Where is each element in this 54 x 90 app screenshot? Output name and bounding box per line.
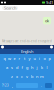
staticText: q — [3, 56, 5, 61]
staticText: g — [26, 65, 28, 70]
staticText: h — [31, 65, 33, 70]
staticText: r — [18, 56, 20, 61]
staticText: p — [48, 56, 50, 61]
staticText: k — [41, 65, 43, 70]
staticText: 9:41 — [46, 0, 53, 5]
staticText: ?123 — [2, 84, 9, 87]
staticText: c — [21, 74, 23, 79]
staticText: . — [41, 83, 42, 88]
staticText: j — [36, 65, 37, 70]
staticText: n — [36, 74, 38, 79]
staticText: , — [12, 83, 13, 88]
button[interactable]: Search — [2, 6, 18, 10]
staticText: d — [16, 65, 18, 70]
staticText: u — [33, 56, 35, 61]
staticText: y — [28, 56, 30, 61]
staticText: ok — [45, 18, 49, 23]
staticText: b — [31, 74, 33, 79]
staticText: Search — [4, 5, 16, 11]
staticText: o — [43, 56, 45, 61]
staticText: a — [6, 65, 8, 70]
staticText: l — [46, 65, 47, 70]
staticText: z — [11, 74, 13, 79]
staticText: v — [26, 74, 28, 79]
staticText: English — [21, 49, 33, 54]
staticText: i — [39, 56, 40, 61]
staticText: e — [13, 56, 15, 61]
staticText: x — [16, 74, 18, 79]
staticText: w — [8, 56, 11, 61]
staticText: m — [40, 74, 44, 79]
staticText: t — [24, 56, 25, 61]
staticText: s — [11, 65, 13, 70]
staticText: Messages are end-to-end encrypted — [2, 39, 52, 43]
